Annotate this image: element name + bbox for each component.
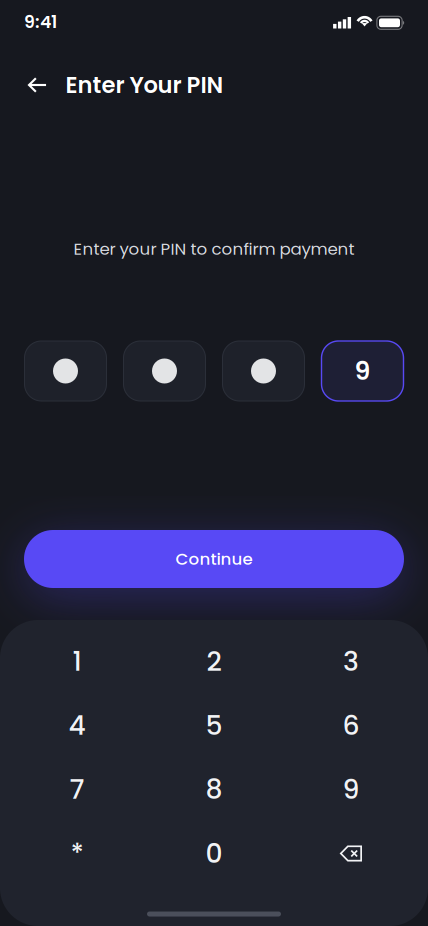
button[interactable]: Continue [24, 530, 404, 588]
staticText: 7 [69, 771, 84, 808]
staticText: 5 [205, 707, 222, 744]
button[interactable]: 1 [8, 629, 145, 693]
staticText: 8 [205, 771, 222, 808]
button[interactable]: Delete [282, 821, 419, 885]
staticText: Enter your PIN to confirm payment [73, 237, 354, 261]
button[interactable]: 2 [145, 629, 282, 693]
button[interactable]: 7 [8, 757, 145, 821]
staticText: 9 [354, 353, 370, 389]
button[interactable]: 8 [145, 757, 282, 821]
button[interactable]: PIN digit 3, entered [222, 341, 304, 401]
staticText: 3 [343, 643, 359, 680]
button[interactable]: 5 [145, 693, 282, 757]
staticText: 1 [72, 643, 81, 680]
button[interactable]: 3 [282, 629, 419, 693]
button[interactable]: 0 [145, 821, 282, 885]
staticText: Continue [175, 547, 252, 571]
button[interactable]: 6 [282, 693, 419, 757]
button[interactable]: Back [16, 62, 59, 108]
staticText: 6 [342, 707, 359, 744]
staticText: 0 [205, 835, 222, 872]
staticText: Enter Your PIN [65, 69, 223, 101]
staticText: 9:41 [24, 10, 57, 34]
staticText: * [70, 835, 83, 872]
staticText: 9 [342, 771, 359, 808]
staticText: 2 [206, 643, 221, 680]
staticText: 4 [68, 707, 85, 744]
button[interactable]: 4 [8, 693, 145, 757]
button[interactable]: 9 [282, 757, 419, 821]
button[interactable]: * [8, 821, 145, 885]
button[interactable]: PIN digit 1, entered [24, 341, 106, 401]
button[interactable]: 9 [321, 341, 403, 401]
button[interactable]: PIN digit 2, entered [123, 341, 205, 401]
